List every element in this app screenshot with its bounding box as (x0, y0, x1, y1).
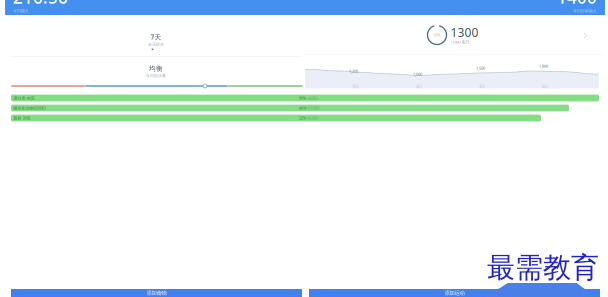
staticText: 1300 (450, 24, 478, 40)
button[interactable]: 碳水化合物(250克) (11, 105, 599, 111)
staticText: 216.56 (13, 0, 68, 8)
button[interactable]: More (581, 30, 590, 41)
staticText: / 1400 毫升 (450, 39, 469, 45)
staticText: 今日饮水量 (146, 73, 166, 78)
staticText: (115克) (307, 105, 319, 111)
button[interactable]: 添加食物 (11, 289, 302, 297)
staticText: 最需教育 (487, 250, 599, 285)
staticText: 脂肪 20克 (13, 115, 30, 121)
staticText: 1,000 (413, 71, 422, 77)
staticText: 46% (299, 105, 306, 111)
staticText: 今日目标摄入 (573, 8, 597, 13)
staticText: ▶ (152, 48, 154, 51)
staticText: (43克) (307, 95, 317, 101)
staticText: 1,200 (349, 68, 358, 74)
staticText: 添加运动 (444, 290, 464, 296)
staticText: 7天 (150, 32, 161, 41)
button[interactable]: 均衡 (10, 57, 302, 80)
button[interactable]: 脂肪 20克 (11, 115, 599, 121)
button[interactable]: 添加运动 (309, 289, 600, 297)
staticText: 3日 (479, 83, 485, 89)
staticText: 1日 (352, 83, 358, 89)
staticText: 均衡 (149, 64, 163, 73)
staticText: (4.4克) (307, 115, 318, 121)
button[interactable]: 蛋白质 48克 (11, 95, 599, 101)
staticText: 93% (433, 32, 440, 38)
staticText: 2日 (416, 83, 422, 89)
staticText: 4日 (542, 83, 548, 89)
staticText: 1,800 (539, 63, 548, 69)
staticText: 22% (299, 115, 306, 121)
staticText: 会员饮水 (148, 42, 164, 47)
button[interactable]: 7天 (10, 16, 302, 56)
staticText: 今日摄入 (13, 8, 29, 13)
staticText: 90% (299, 95, 306, 101)
staticText: 蛋白质 48克 (13, 95, 34, 101)
staticText: 1,500 (476, 65, 485, 71)
staticText: 添加食物 (146, 290, 166, 296)
staticText: 碳水化合物(250克) (13, 105, 45, 111)
staticText: 1400 (557, 0, 597, 8)
